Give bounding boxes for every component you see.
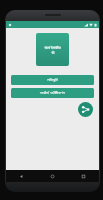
staticText: লাইব্রেরি: [47, 78, 58, 82]
button[interactable]: লাইব্রেরি: [11, 75, 94, 85]
staticText: অন্যান্য অ্যাপ্লিকেশন: [40, 90, 65, 96]
button[interactable]: Share: [78, 102, 93, 117]
staticText: বই: [51, 51, 55, 54]
button[interactable]: App logo: [36, 33, 69, 66]
button[interactable]: Recents: [68, 170, 99, 182]
staticText: বাংলা ইসলামিক: [44, 45, 61, 50]
button[interactable]: অন্যান্য অ্যাপ্লিকেশন: [11, 88, 94, 98]
button[interactable]: Home: [37, 170, 68, 182]
button[interactable]: Back: [6, 170, 37, 182]
